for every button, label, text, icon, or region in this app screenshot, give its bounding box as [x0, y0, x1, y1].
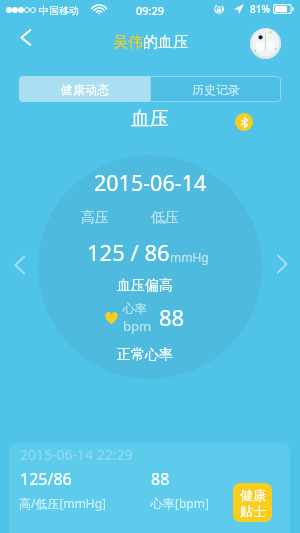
- staticText: 贴士: [240, 503, 266, 519]
- staticText: 的血压: [143, 33, 188, 52]
- button[interactable]: 2015-06-14 22:29: [9, 443, 290, 533]
- staticText: 09:29: [136, 3, 165, 18]
- staticText: 正常心率: [117, 346, 173, 364]
- staticText: 88: [151, 468, 170, 490]
- button[interactable]: Bluetooth: [235, 113, 253, 131]
- staticText: 高压: [81, 209, 109, 227]
- button[interactable]: Profile: [250, 28, 281, 59]
- staticText: 心率: [123, 301, 147, 316]
- staticText: 血压: [131, 107, 169, 131]
- staticText: 血压偏高: [117, 277, 173, 295]
- button[interactable]: Previous reading: [5, 251, 33, 279]
- staticText: 健康: [240, 487, 266, 503]
- staticText: bpm: [123, 317, 152, 335]
- button[interactable]: 健康动态: [19, 76, 150, 102]
- staticText: 健康动态: [61, 82, 109, 97]
- staticText: mmHg: [170, 249, 209, 265]
- staticText: 历史记录: [192, 82, 240, 97]
- staticText: 2015-06-14: [94, 168, 207, 197]
- button[interactable]: Next reading: [268, 250, 296, 278]
- staticText: 125 / 86: [87, 237, 170, 267]
- staticText: 88: [159, 302, 185, 332]
- staticText: 心率[bpm]: [151, 495, 209, 511]
- staticText: 中国移动: [39, 4, 79, 17]
- staticText: 吴伟: [113, 33, 143, 52]
- staticText: 2015-06-14 22:29: [20, 445, 133, 464]
- staticText: 低压: [151, 209, 179, 227]
- staticText: 81%: [250, 2, 270, 16]
- staticText: 高/低压[mmHg]: [19, 495, 107, 511]
- button[interactable]: Back: [11, 23, 39, 51]
- staticText: 125/86: [20, 468, 72, 490]
- button[interactable]: 健康: [233, 483, 272, 522]
- button[interactable]: 历史记录: [150, 76, 281, 102]
